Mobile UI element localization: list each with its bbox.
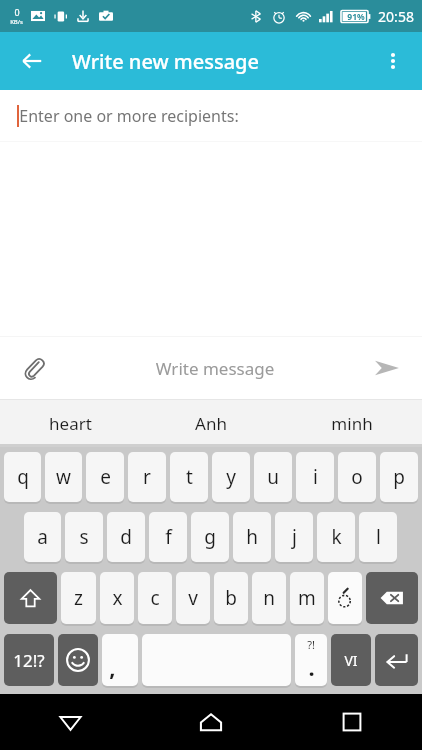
- button[interactable]: h: [233, 512, 271, 562]
- button[interactable]: Shift: [4, 572, 57, 624]
- button[interactable]: x: [100, 572, 134, 624]
- staticText: t: [186, 464, 193, 490]
- button[interactable]: a: [24, 512, 61, 562]
- staticText: Write message: [66, 357, 364, 380]
- button[interactable]: ,: [102, 634, 138, 686]
- staticText: s: [79, 524, 89, 550]
- staticText: k: [331, 524, 342, 550]
- staticText: w: [56, 464, 71, 490]
- button[interactable]: j: [275, 512, 313, 562]
- button[interactable]: Back: [8, 37, 56, 85]
- button[interactable]: Home: [140, 694, 281, 750]
- staticText: v: [188, 585, 198, 611]
- staticText: j: [292, 524, 297, 550]
- button[interactable]: u: [254, 452, 292, 502]
- staticText: 20:58: [378, 7, 414, 26]
- staticText: a: [37, 524, 48, 550]
- button[interactable]: d: [107, 512, 145, 562]
- staticText: .: [308, 652, 315, 682]
- staticText: o: [351, 464, 363, 490]
- button[interactable]: l: [359, 512, 397, 562]
- staticText: 12!?: [13, 649, 45, 672]
- button[interactable]: Accent characters: [328, 572, 362, 624]
- button[interactable]: k: [317, 512, 355, 562]
- button[interactable]: ?!: [295, 634, 327, 686]
- staticText: r: [143, 464, 151, 490]
- staticText: m: [298, 585, 316, 611]
- button[interactable]: c: [138, 572, 172, 624]
- button[interactable]: g: [191, 512, 229, 562]
- staticText: Enter one or more recipients:: [19, 105, 239, 127]
- button[interactable]: z: [61, 572, 96, 624]
- staticText: ?!: [307, 637, 315, 652]
- staticText: z: [74, 585, 83, 611]
- staticText: h: [246, 524, 258, 550]
- staticText: q: [17, 464, 29, 490]
- button[interactable]: Attach file: [12, 346, 56, 390]
- button[interactable]: More options: [370, 38, 416, 84]
- staticText: minh: [331, 412, 373, 435]
- staticText: e: [100, 464, 111, 490]
- button[interactable]: Enter one or more recipients:: [0, 90, 422, 141]
- button[interactable]: Back: [0, 694, 140, 750]
- button[interactable]: Emoji: [58, 634, 98, 686]
- button[interactable]: 12!?: [4, 634, 54, 686]
- staticText: VI: [344, 651, 358, 670]
- button[interactable]: Recent apps: [281, 694, 422, 750]
- staticText: b: [225, 585, 237, 611]
- staticText: l: [376, 524, 381, 550]
- staticText: Anh: [195, 412, 227, 435]
- button[interactable]: v: [176, 572, 210, 624]
- staticText: 91%: [347, 11, 365, 23]
- button[interactable]: minh: [281, 400, 422, 447]
- button[interactable]: y: [212, 452, 250, 502]
- button[interactable]: m: [290, 572, 324, 624]
- staticText: d: [120, 524, 132, 550]
- button[interactable]: p: [380, 452, 418, 502]
- button[interactable]: Send: [364, 345, 410, 391]
- button[interactable]: r: [128, 452, 166, 502]
- staticText: i: [313, 464, 318, 490]
- staticText: 0: [14, 6, 20, 18]
- staticText: heart: [49, 412, 92, 435]
- button[interactable]: w: [45, 452, 82, 502]
- button[interactable]: Anh: [140, 400, 281, 447]
- button[interactable]: Enter: [375, 634, 418, 686]
- staticText: u: [267, 464, 279, 490]
- button[interactable]: t: [170, 452, 208, 502]
- button[interactable]: s: [65, 512, 103, 562]
- button[interactable]: e: [86, 452, 124, 502]
- staticText: KB/s: [10, 18, 23, 26]
- button[interactable]: q: [4, 452, 41, 502]
- staticText: ,: [109, 652, 116, 682]
- button[interactable]: VI: [331, 634, 371, 686]
- button[interactable]: n: [252, 572, 286, 624]
- staticText: f: [165, 524, 172, 550]
- staticText: y: [226, 464, 236, 490]
- staticText: p: [393, 464, 405, 490]
- button[interactable]: f: [149, 512, 187, 562]
- staticText: Write new message: [72, 48, 259, 75]
- button[interactable]: b: [214, 572, 248, 624]
- staticText: g: [204, 524, 216, 550]
- staticText: c: [150, 585, 160, 611]
- staticText: x: [112, 585, 123, 611]
- staticText: n: [263, 585, 275, 611]
- button[interactable]: Backspace: [366, 572, 418, 624]
- button[interactable]: o: [338, 452, 376, 502]
- button[interactable]: heart: [0, 400, 140, 447]
- button[interactable]: i: [296, 452, 334, 502]
